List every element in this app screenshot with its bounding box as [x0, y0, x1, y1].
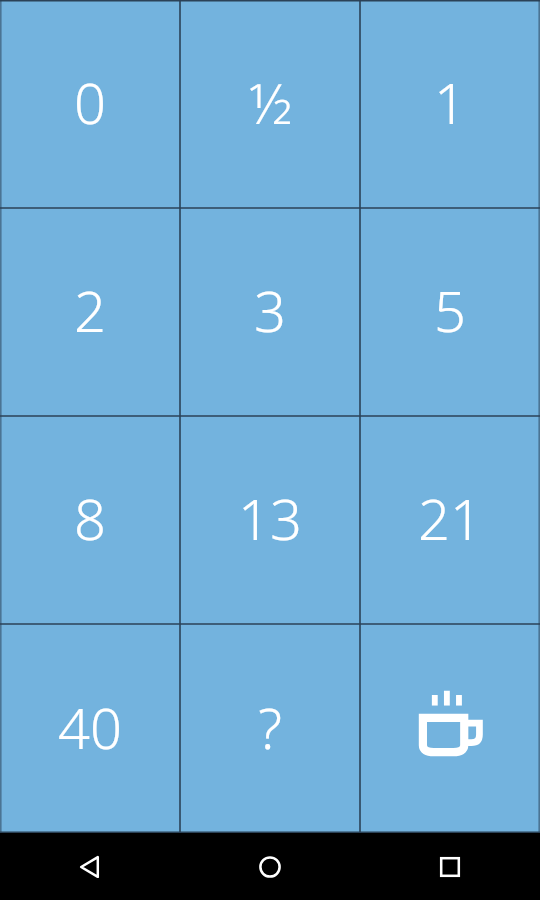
- button[interactable]: 21: [360, 416, 540, 624]
- staticText: 5: [434, 272, 466, 348]
- button[interactable]: 8: [0, 416, 180, 624]
- staticText: 2: [74, 272, 106, 348]
- staticText: 0: [74, 64, 106, 140]
- staticText: 8: [74, 480, 106, 556]
- staticText: 40: [58, 689, 122, 765]
- button[interactable]: ½: [180, 0, 360, 208]
- button[interactable]: 5: [360, 208, 540, 416]
- button[interactable]: ?: [180, 624, 360, 833]
- button[interactable]: 40: [0, 624, 180, 833]
- button[interactable]: 2: [0, 208, 180, 416]
- staticText: 13: [238, 480, 302, 556]
- staticText: ½: [249, 64, 292, 140]
- button[interactable]: 0: [0, 0, 180, 208]
- button[interactable]: 1: [360, 0, 540, 208]
- staticText: 1: [434, 64, 466, 140]
- staticText: 3: [254, 272, 286, 348]
- button[interactable]: 3: [180, 208, 360, 416]
- button[interactable]: Recent apps: [360, 833, 540, 900]
- button[interactable]: 13: [180, 416, 360, 624]
- staticText: 21: [418, 480, 482, 556]
- button[interactable]: [360, 624, 540, 833]
- staticText: ?: [258, 689, 282, 765]
- button[interactable]: Back: [0, 833, 180, 900]
- button[interactable]: Home: [180, 833, 360, 900]
